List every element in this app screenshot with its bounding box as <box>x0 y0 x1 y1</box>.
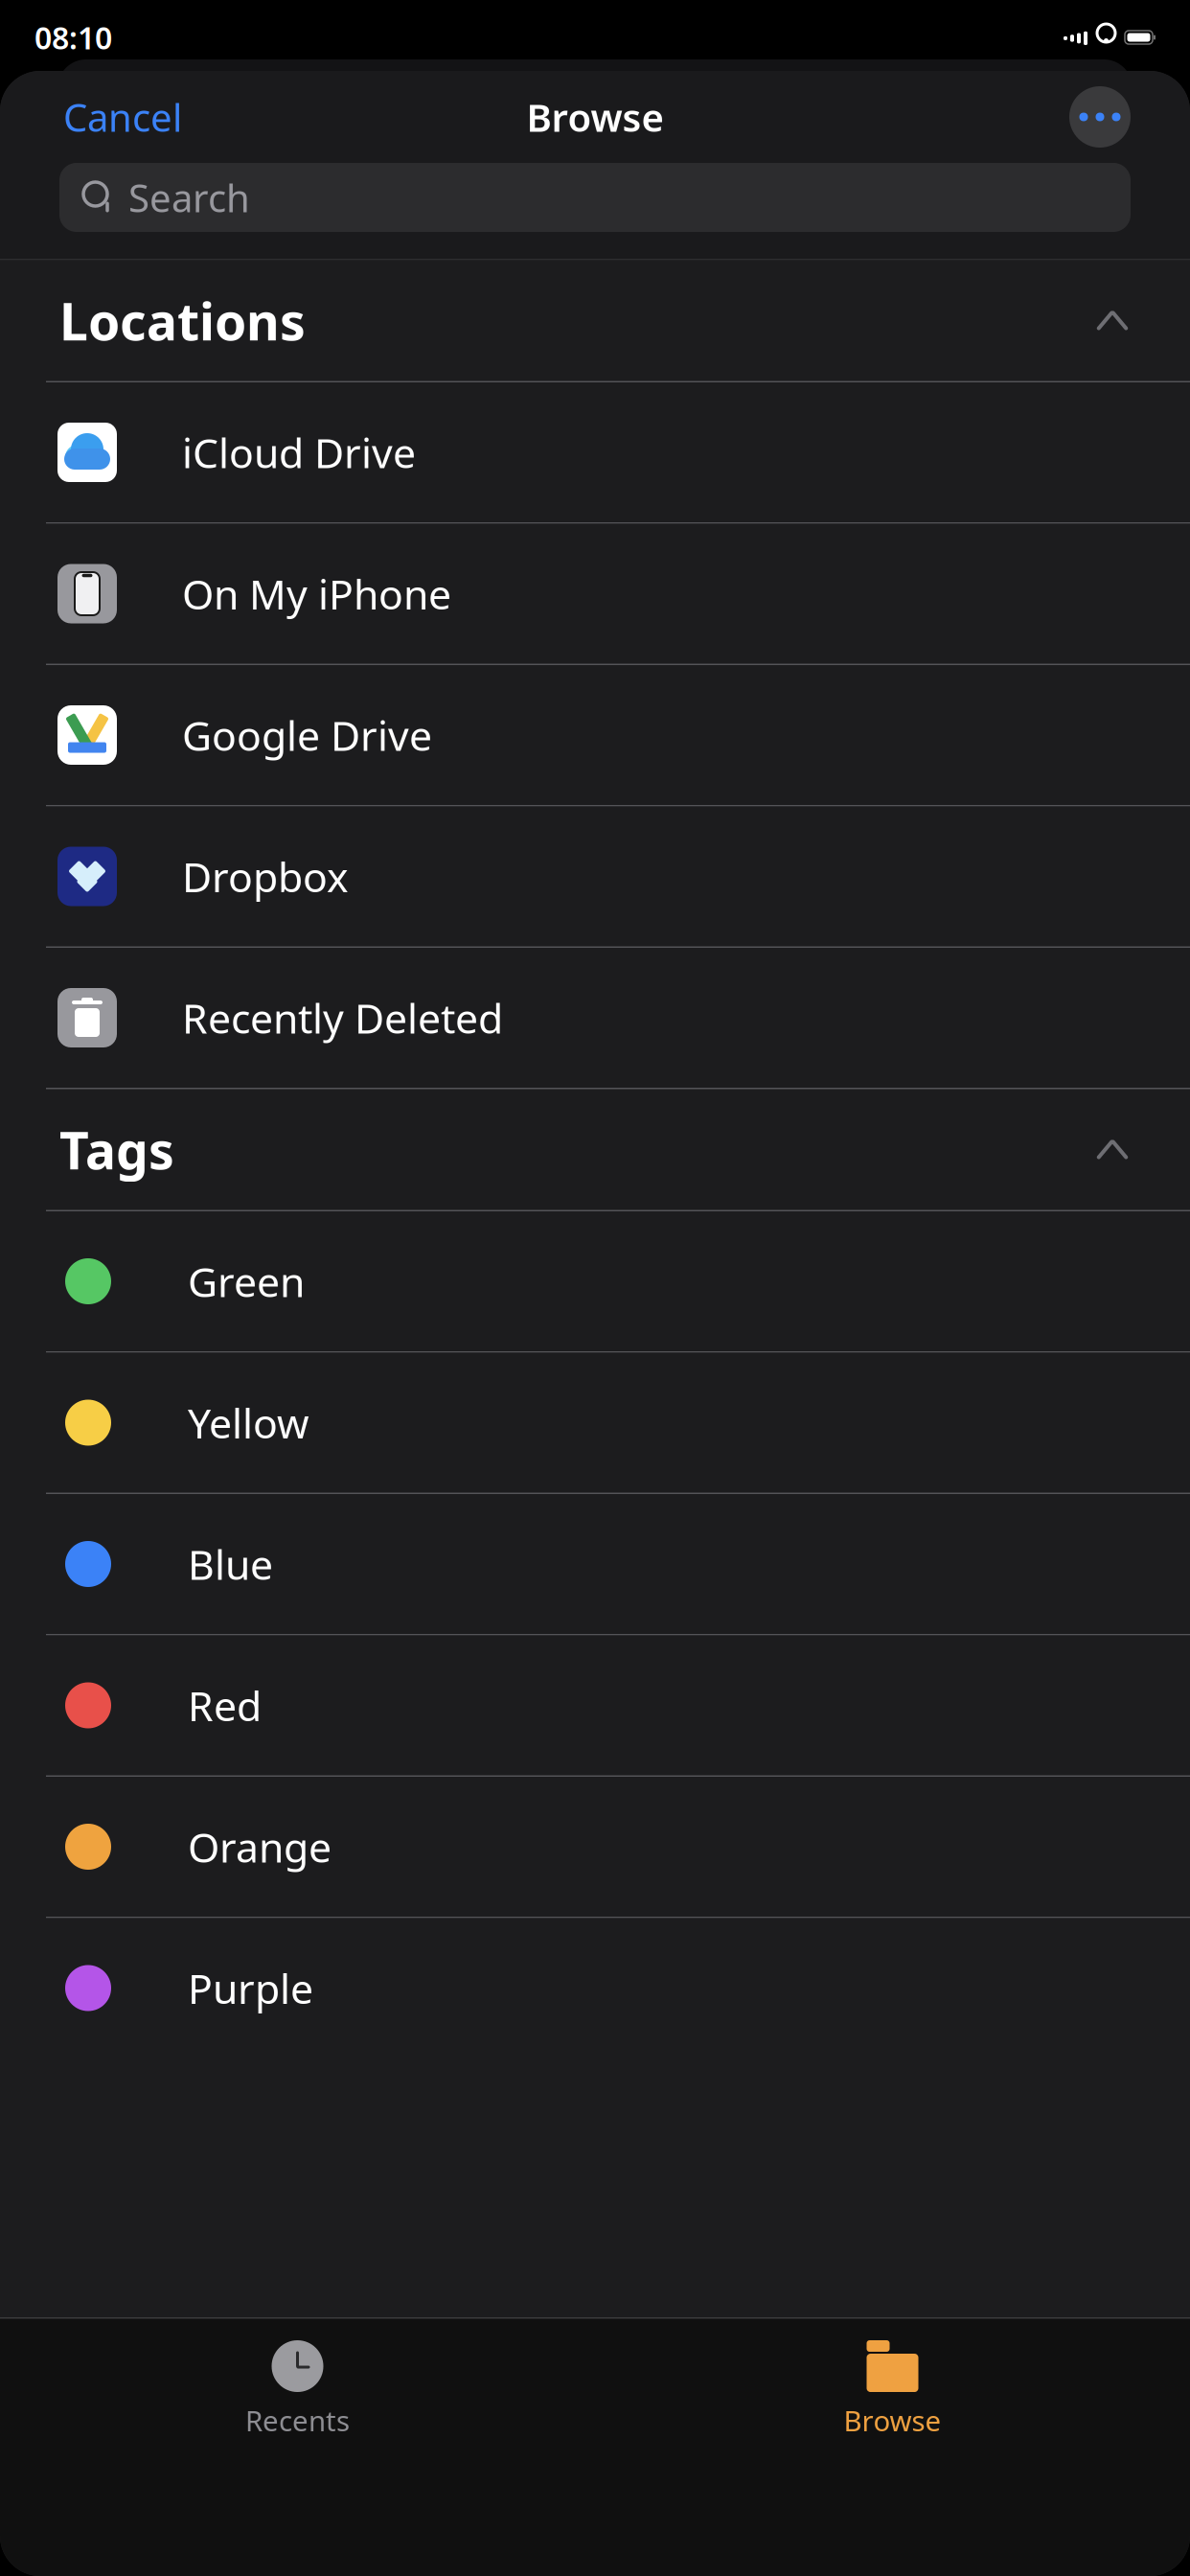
staticText: On My iPhone <box>182 567 451 621</box>
staticText: Green <box>188 1254 305 1309</box>
staticText: Tags <box>59 1116 174 1183</box>
staticText: Yellow <box>188 1396 309 1450</box>
staticText: Recently Deleted <box>182 991 503 1045</box>
button[interactable]: Recents <box>173 2332 422 2447</box>
staticText: Dropbox <box>182 849 349 904</box>
staticText: Cancel <box>63 91 182 142</box>
staticText: Orange <box>188 1820 332 1874</box>
button[interactable]: Dropbox <box>0 806 1190 946</box>
button[interactable]: Orange <box>0 1777 1190 1917</box>
staticText: Locations <box>59 287 306 354</box>
button[interactable]: More options <box>1069 86 1131 148</box>
button[interactable]: Recently Deleted <box>0 948 1190 1088</box>
button[interactable]: Search <box>59 163 1131 232</box>
button[interactable]: Green <box>0 1211 1190 1351</box>
button[interactable]: iCloud Drive <box>0 382 1190 522</box>
staticText: 08:10 <box>34 17 112 58</box>
button[interactable]: Blue <box>0 1494 1190 1634</box>
button[interactable]: Red <box>0 1635 1190 1775</box>
staticText: Google Drive <box>182 708 432 762</box>
button[interactable]: Yellow <box>0 1353 1190 1493</box>
staticText: Search <box>128 172 250 223</box>
staticText: Purple <box>188 1961 313 2015</box>
staticText: Browse <box>526 91 664 142</box>
button[interactable]: Google Drive <box>0 665 1190 805</box>
button[interactable]: Locations <box>0 260 1190 381</box>
staticText: Recents <box>245 2402 350 2439</box>
button[interactable]: On My iPhone <box>0 524 1190 664</box>
button[interactable]: Purple <box>0 1918 1190 2058</box>
staticText: Browse <box>844 2402 941 2439</box>
button[interactable]: Browse <box>768 2332 1017 2447</box>
staticText: iCloud Drive <box>182 425 416 480</box>
button[interactable]: Cancel <box>59 82 186 152</box>
button[interactable]: Tags <box>0 1089 1190 1210</box>
staticText: Blue <box>188 1537 273 1591</box>
staticText: Red <box>188 1678 262 1733</box>
